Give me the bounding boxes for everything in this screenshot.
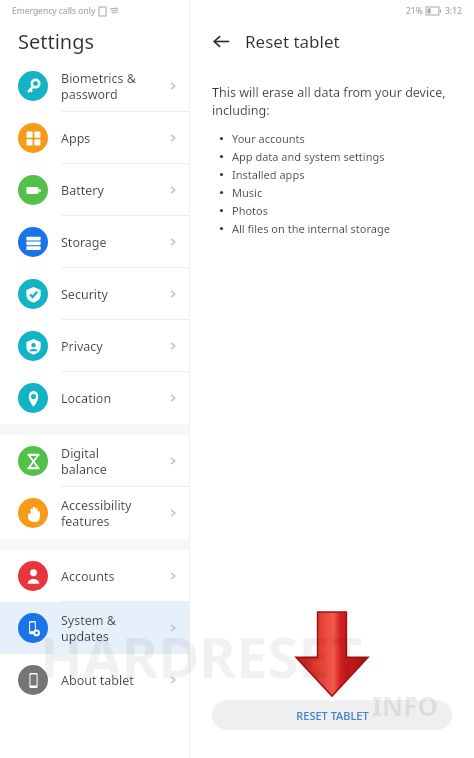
staticText: RESET TABLET (296, 708, 369, 723)
staticText: Installed apps (232, 167, 305, 182)
staticText: About tablet (61, 672, 167, 689)
staticText: Your accounts (232, 131, 305, 146)
button[interactable]: Accounts (0, 550, 189, 602)
staticText: All files on the internal storage (232, 221, 390, 236)
staticText: Security (61, 286, 167, 303)
button[interactable]: About tablet (0, 654, 189, 706)
staticText: Settings (18, 28, 95, 55)
staticText: Biometrics & password (61, 70, 167, 102)
staticText: INFO (372, 688, 439, 723)
staticText: 3:12 (445, 5, 462, 17)
button[interactable]: Privacy (0, 320, 189, 372)
staticText: Digital balance (61, 445, 167, 477)
staticText: 21% (406, 5, 423, 17)
button[interactable]: RESET TABLET (212, 700, 452, 730)
staticText: Accounts (61, 568, 167, 585)
button[interactable]: System & updates (0, 602, 189, 654)
staticText: Location (61, 390, 167, 407)
button[interactable]: Back (208, 28, 234, 54)
staticText: Privacy (61, 338, 167, 355)
button[interactable]: Location (0, 372, 189, 424)
button[interactable]: Apps (0, 112, 189, 164)
button[interactable]: Battery (0, 164, 189, 216)
button[interactable]: Security (0, 268, 189, 320)
button[interactable]: Accessibility features (0, 487, 189, 539)
button[interactable]: Digital balance (0, 435, 189, 487)
staticText: Storage (61, 234, 167, 251)
staticText: Battery (61, 182, 167, 199)
staticText: App data and system settings (232, 149, 385, 164)
staticText: Music (232, 185, 263, 200)
staticText: HARDRESET (40, 618, 362, 694)
staticText: System & updates (61, 612, 167, 644)
staticText: This will erase all data from your devic… (212, 84, 452, 119)
staticText: Apps (61, 130, 167, 147)
button[interactable]: Storage (0, 216, 189, 268)
staticText: Emergency calls only (12, 5, 96, 17)
staticText: Photos (232, 203, 269, 218)
staticText: Reset tablet (245, 30, 340, 53)
staticText: Accessibility features (61, 497, 167, 529)
button[interactable]: Biometrics & password (0, 60, 189, 112)
